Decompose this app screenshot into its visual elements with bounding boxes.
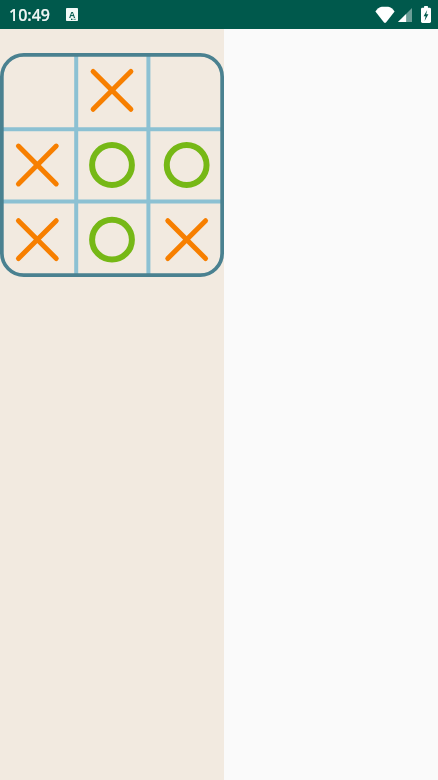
button[interactable]: Square row 2 column 1, X xyxy=(0,127,74,202)
button[interactable]: Square row 3 column 3, X xyxy=(149,202,224,277)
button[interactable]: Square row 3 column 2, O xyxy=(74,202,149,277)
button[interactable]: Square row 3 column 1, X xyxy=(0,202,74,277)
button[interactable]: Square row 2 column 2, O xyxy=(74,127,149,202)
button[interactable]: Square row 2 column 3, O xyxy=(149,127,224,202)
button[interactable]: Square row 1 column 1, empty xyxy=(0,53,74,127)
button[interactable]: Square row 1 column 2, X xyxy=(74,53,149,127)
button[interactable]: Square row 1 column 3, empty xyxy=(149,53,224,127)
staticText: A xyxy=(69,8,76,20)
staticText: 10:49 xyxy=(9,4,50,26)
